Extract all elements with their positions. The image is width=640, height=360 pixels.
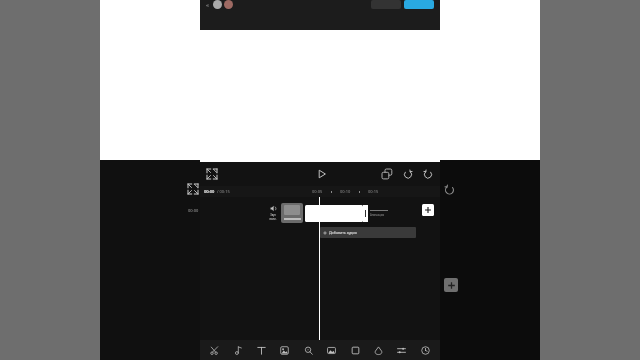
button[interactable]: Добавить аудио [320,227,416,238]
button[interactable]: Play [315,167,329,181]
button[interactable]: Redo [421,167,435,181]
button[interactable]: Audio [230,343,247,358]
button[interactable]: Video clip [281,203,303,223]
button[interactable]: Filters [370,343,387,358]
staticText: Добавить аудио [329,230,357,235]
staticText: « [206,1,210,9]
staticText: 00:10 [340,189,351,194]
button[interactable]: Profile [213,0,222,9]
button[interactable]: Overlay [323,343,340,358]
button[interactable]: Text [253,343,270,358]
button[interactable]: Add clip [422,204,434,216]
button[interactable]: Undo [401,167,415,181]
button[interactable]: Trim handle [363,205,368,222]
button[interactable]: Layers [380,167,394,181]
button[interactable]: Selected clip [305,205,363,222]
button[interactable]: Primary action [404,0,434,9]
button[interactable]: Stickers [276,343,293,358]
button[interactable]: Format [347,343,364,358]
staticText: 00:00 [188,208,199,213]
staticText: выкл. [269,217,277,221]
button[interactable]: Profile [224,0,233,9]
button[interactable]: Edit [206,343,223,358]
button[interactable]: Adjust [393,343,410,358]
staticText: 00:05 [312,189,323,194]
staticText: Анимация [370,213,385,217]
button[interactable]: Full screen [205,167,219,181]
staticText: 00:15 [368,189,379,194]
button[interactable]: Mute clip [268,205,278,221]
button[interactable]: Speed [417,343,434,358]
staticText: 00:00 [204,189,215,194]
staticText: / 00:15 [217,189,230,194]
staticText: Звук [270,213,276,217]
button[interactable]: Effects [300,343,317,358]
